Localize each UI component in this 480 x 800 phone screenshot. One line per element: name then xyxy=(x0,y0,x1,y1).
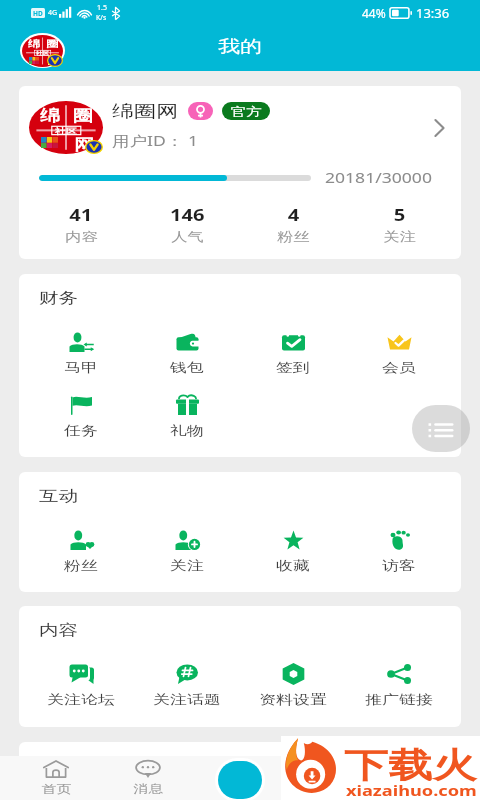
staticText: 粉丝 xyxy=(277,229,310,245)
staticText: K/s xyxy=(96,13,107,23)
staticText: 首页 xyxy=(41,782,71,796)
button[interactable]: New post xyxy=(218,761,262,799)
button[interactable]: 粉丝 xyxy=(28,530,134,573)
button[interactable]: 马甲 xyxy=(28,332,134,375)
staticText: HD xyxy=(33,9,43,18)
staticText: 关注 xyxy=(170,557,204,573)
staticText: 内容 xyxy=(65,229,98,245)
staticText: 财务 xyxy=(39,289,78,308)
button[interactable]: 4 xyxy=(240,204,346,245)
staticText: 1.5 xyxy=(97,3,107,13)
staticText: 20181/30000 xyxy=(325,169,433,187)
staticText: 我的 xyxy=(409,782,439,796)
button[interactable]: Profile avatar xyxy=(20,33,65,68)
staticText: 社区 xyxy=(55,126,77,136)
staticText: 粉丝 xyxy=(64,557,98,573)
staticText: 钱包 xyxy=(170,359,204,375)
staticText: 用户ID： 1 xyxy=(112,132,199,150)
staticText: 绵 xyxy=(28,38,41,50)
button[interactable]: 任务 xyxy=(28,395,134,438)
staticText: 圈 xyxy=(46,38,59,50)
staticText: 社区 xyxy=(36,50,49,56)
staticText: 绵圈网 xyxy=(112,101,178,122)
staticText: 签到 xyxy=(276,359,310,375)
button[interactable]: 收藏 xyxy=(240,530,346,573)
button[interactable]: 签到 xyxy=(240,332,346,375)
staticText: 收藏 xyxy=(276,557,310,573)
staticText: 5 xyxy=(394,204,405,225)
staticText: 官方 xyxy=(230,104,262,119)
staticText: 会员 xyxy=(382,359,416,375)
button[interactable]: 会员 xyxy=(346,332,452,375)
staticText: xiazaihuo.com xyxy=(346,781,477,800)
button[interactable]: 礼物 xyxy=(134,395,240,438)
staticText: 下载火 xyxy=(344,744,477,787)
staticText: 访客 xyxy=(382,557,416,573)
staticText: 发现 xyxy=(317,782,347,796)
staticText: 礼物 xyxy=(170,422,204,438)
staticText: 内容 xyxy=(39,621,78,640)
button[interactable]: 首页 xyxy=(10,756,102,800)
staticText: 44% xyxy=(362,5,386,21)
staticText: 网 xyxy=(74,135,95,155)
button[interactable]: 5 xyxy=(346,204,452,245)
staticText: 关注 xyxy=(383,229,416,245)
staticText: 关注话题 xyxy=(153,691,221,707)
staticText: 13:36 xyxy=(416,4,450,22)
staticText: 任务 xyxy=(64,422,98,438)
button[interactable]: 我的 xyxy=(378,756,470,800)
staticText: 关注论坛 xyxy=(47,691,115,707)
button[interactable]: 发现 xyxy=(286,756,378,800)
staticText: 推广链接 xyxy=(365,691,433,707)
button[interactable]: 41 xyxy=(28,204,134,245)
button[interactable]: 资料设置 xyxy=(240,664,346,707)
staticText: 4G xyxy=(48,8,58,18)
staticText: 马甲 xyxy=(64,359,98,375)
button[interactable]: 绵 xyxy=(19,86,461,259)
staticText: 我的 xyxy=(218,36,262,57)
button[interactable]: 推广链接 xyxy=(346,664,452,707)
staticText: 圈 xyxy=(73,106,94,126)
staticText: 4 xyxy=(288,204,299,225)
button[interactable]: 消息 xyxy=(102,756,194,800)
staticText: 146 xyxy=(170,204,205,225)
staticText: 资料设置 xyxy=(259,691,327,707)
staticText: 互动 xyxy=(39,487,78,506)
button[interactable]: More options xyxy=(412,405,470,452)
button[interactable]: 关注话题 xyxy=(134,664,240,707)
staticText: 网 xyxy=(47,55,60,67)
staticText: 人气 xyxy=(171,229,204,245)
button[interactable]: 访客 xyxy=(346,530,452,573)
staticText: 消息 xyxy=(134,782,163,796)
button[interactable]: 钱包 xyxy=(134,332,240,375)
button[interactable]: 146 xyxy=(134,204,240,245)
staticText: 绵 xyxy=(40,106,61,126)
staticText: 41 xyxy=(69,204,93,225)
button[interactable]: 关注 xyxy=(134,530,240,573)
button[interactable]: 关注论坛 xyxy=(28,664,134,707)
